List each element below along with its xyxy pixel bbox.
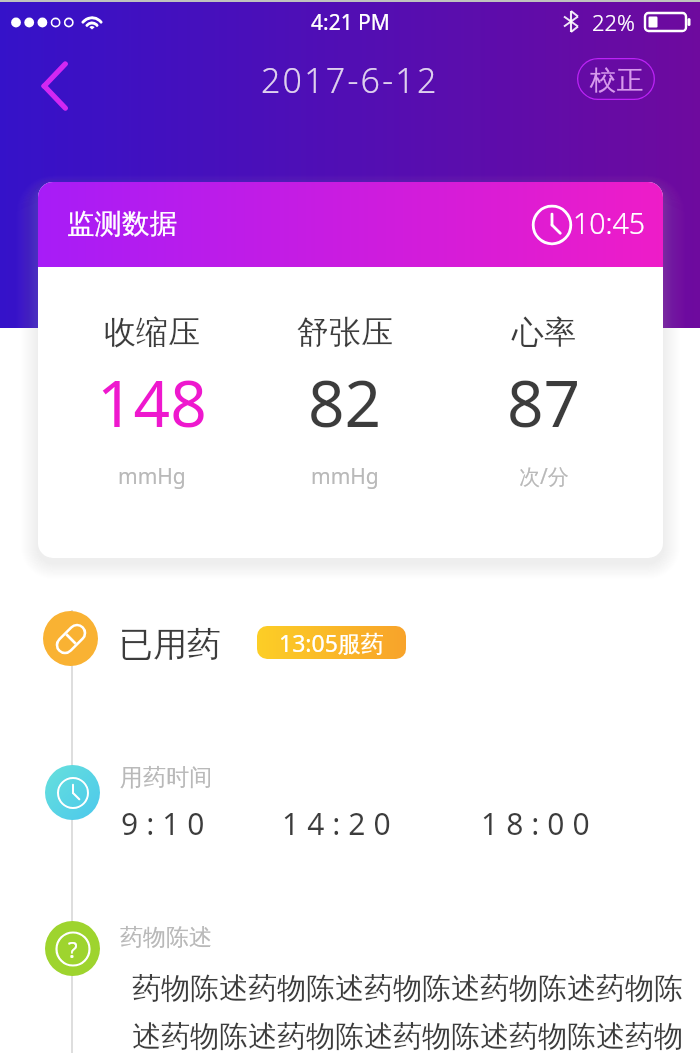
staticText: 22% [592,7,635,37]
staticText: mmHg [118,462,186,491]
staticText: 148 [97,359,207,446]
staticText: 收缩压 [104,312,200,352]
staticText: 87 [507,359,581,446]
button[interactable]: 13:05服药 [257,626,406,659]
staticText: 心率 [512,312,576,352]
staticText: 10:45 [573,204,646,243]
staticText: 用药时间 [120,763,212,792]
staticText: 18:00 [481,803,598,844]
staticText: 4:21 PM [311,8,390,37]
button[interactable]: 校正 [577,58,655,100]
staticText: ? [68,934,78,964]
staticText: 14:20 [282,803,399,844]
staticText: mmHg [311,462,379,491]
staticText: 校正 [590,63,643,96]
staticText: 舒张压 [297,312,393,352]
staticText: 13:05服药 [279,627,384,658]
staticText: 监测数据 [67,207,177,242]
staticText: 2017-6-12 [261,57,439,103]
staticText: 82 [308,359,382,446]
staticText: 已用药 [119,623,221,666]
staticText: 次/分 [519,462,569,491]
staticText: 9:10 [121,803,213,844]
staticText: 药物陈述药物陈述药物陈述药物陈述药物陈述药物陈述药物陈述药物陈述药物陈述药物陈述 [132,970,685,1053]
button[interactable]: Back [26,55,84,117]
staticText: 药物陈述 [120,923,212,952]
